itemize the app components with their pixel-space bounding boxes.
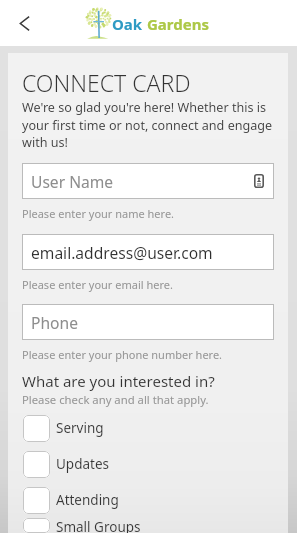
staticText: Small Groups bbox=[56, 518, 141, 533]
staticText: What are you interested in? bbox=[22, 371, 215, 391]
button[interactable]: Serving bbox=[22, 410, 274, 446]
button[interactable]: Phone bbox=[22, 304, 274, 340]
button[interactable]: email.address@user.com bbox=[22, 234, 274, 270]
staticText: Phone bbox=[31, 312, 78, 333]
staticText: Oak bbox=[112, 14, 147, 34]
staticText: Please enter your name here. bbox=[22, 206, 175, 221]
staticText: Serving bbox=[56, 419, 104, 437]
staticText: email.address@user.com bbox=[31, 242, 213, 263]
staticText: User Name bbox=[31, 171, 114, 192]
staticText: We're so glad you're here! Whether this … bbox=[22, 99, 274, 150]
staticText: Updates bbox=[56, 455, 110, 473]
staticText: Gardens bbox=[147, 14, 209, 34]
staticText: Please check any and all that apply. bbox=[22, 392, 209, 407]
button[interactable]: Updates bbox=[22, 446, 274, 482]
staticText: CONNECT CARD bbox=[22, 67, 191, 98]
staticText: Attending bbox=[56, 491, 119, 509]
staticText: Please enter your email here. bbox=[22, 277, 173, 292]
button[interactable]: Attending bbox=[22, 482, 274, 518]
staticText: Please enter your phone number here. bbox=[22, 347, 223, 362]
button[interactable]: Small Groups bbox=[22, 518, 274, 533]
button[interactable]: Back bbox=[9, 8, 40, 39]
button[interactable]: User Name bbox=[22, 163, 274, 199]
